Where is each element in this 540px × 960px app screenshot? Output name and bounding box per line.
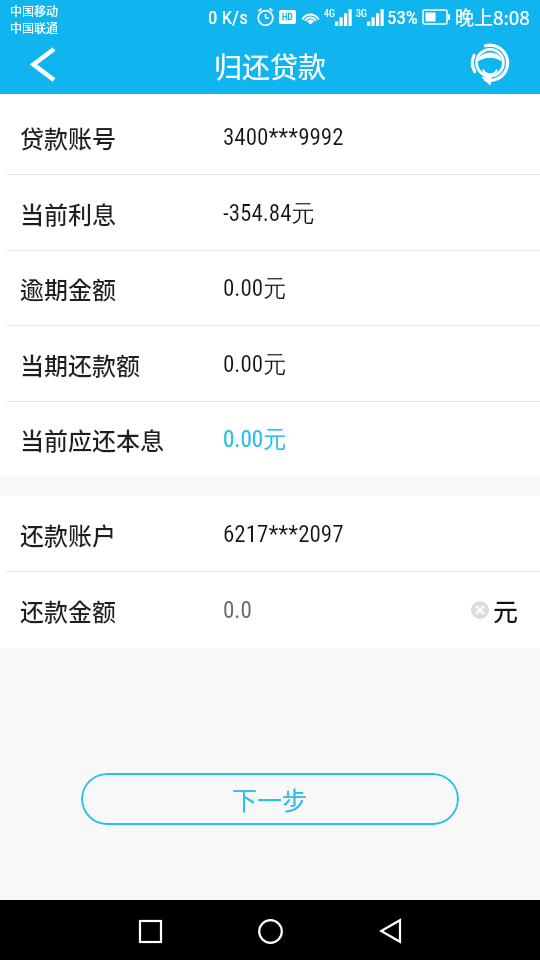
button[interactable]: Home [246, 907, 294, 955]
staticText: 4G [324, 8, 335, 20]
staticText: HD [282, 12, 293, 23]
staticText: 3G [356, 8, 367, 20]
button[interactable]: Back [366, 907, 414, 955]
staticText: 中国联通 [10, 19, 59, 36]
staticText: 晚上8:08 [455, 3, 530, 31]
staticText: 3400***9992 [223, 124, 344, 151]
staticText: 6217***2097 [223, 521, 344, 548]
button[interactable]: 还款账户 [0, 496, 540, 572]
button[interactable]: 当前利息 [0, 175, 540, 251]
button[interactable]: Clear [471, 601, 489, 619]
staticText: 逾期金额 [20, 271, 116, 306]
staticText: 0 K/s [208, 6, 248, 28]
button[interactable]: Customer service [468, 42, 512, 86]
staticText: 下一步 [232, 781, 308, 817]
staticText: 还款账户 [20, 517, 116, 552]
staticText: 当期还款额 [20, 347, 140, 382]
staticText: 中国移动 [10, 2, 59, 19]
button[interactable]: 当前应还本息 [0, 402, 540, 477]
staticText: 贷款账号 [20, 120, 116, 155]
staticText: 还款金额 [20, 593, 116, 628]
button[interactable]: Recents [126, 907, 174, 955]
staticText: 0.00元 [223, 274, 287, 303]
staticText: -354.84元 [223, 199, 315, 228]
staticText: 当前应还本息 [20, 422, 164, 457]
button[interactable]: Back [12, 34, 74, 94]
button[interactable]: 贷款账号 [0, 99, 540, 175]
staticText: 元 [493, 592, 519, 628]
staticText: 0.00元 [223, 425, 287, 454]
button[interactable]: 还款金额 [0, 572, 540, 648]
staticText: 当前利息 [20, 196, 116, 231]
button[interactable]: 下一步 [81, 773, 459, 825]
staticText: 归还贷款 [214, 46, 327, 87]
staticText: 0.00元 [223, 350, 287, 379]
button[interactable]: 当期还款额 [0, 326, 540, 402]
staticText: 53% [387, 6, 418, 28]
staticText: 0.0 [223, 597, 252, 624]
button[interactable]: 逾期金额 [0, 251, 540, 326]
